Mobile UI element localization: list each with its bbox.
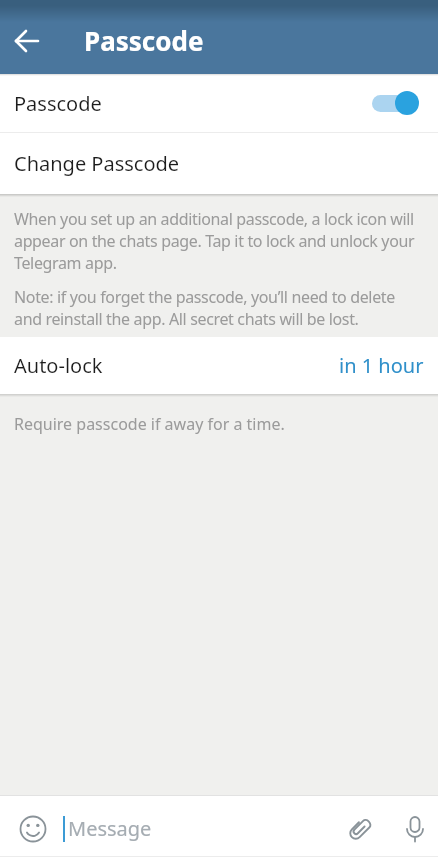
- staticText: Message: [68, 815, 152, 842]
- staticText: When you set up an additional passcode, …: [14, 208, 415, 274]
- staticText: Passcode: [14, 90, 102, 117]
- button[interactable]: Passcode: [0, 74, 438, 132]
- button[interactable]: [18, 814, 48, 844]
- staticText: Change Passcode: [14, 150, 180, 177]
- staticText: Require passcode if away for a time.: [14, 413, 285, 435]
- staticText: Auto-lock: [14, 352, 103, 379]
- button[interactable]: [344, 813, 376, 845]
- button[interactable]: Auto-lock: [0, 337, 438, 394]
- staticText: Passcode: [84, 23, 204, 58]
- button[interactable]: [400, 814, 430, 844]
- staticText: Note: if you forget the passcode, you’ll…: [14, 286, 395, 330]
- staticText: in 1 hour: [339, 352, 424, 379]
- button[interactable]: Change Passcode: [0, 133, 438, 194]
- button[interactable]: [8, 22, 46, 60]
